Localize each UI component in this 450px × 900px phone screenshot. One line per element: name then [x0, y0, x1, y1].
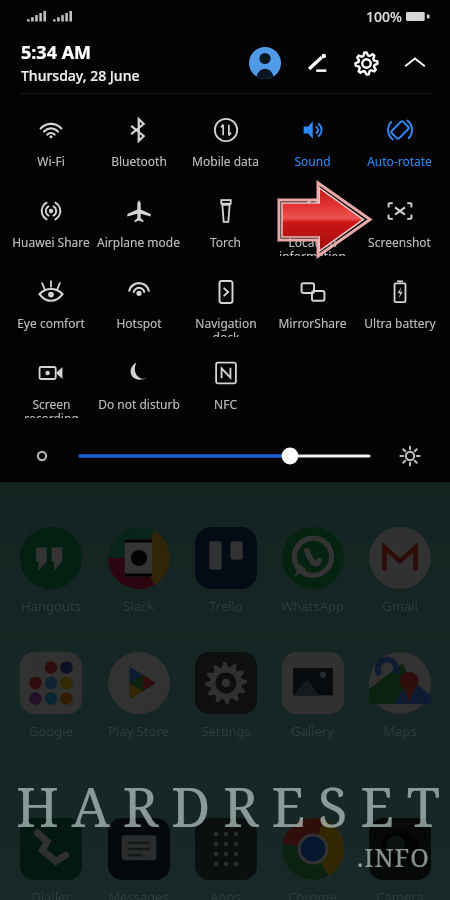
button[interactable]: Gmail: [356, 527, 443, 615]
staticText: Slack: [123, 597, 154, 615]
staticText: Sound: [294, 153, 331, 169]
button[interactable]: NFC: [182, 337, 269, 418]
button[interactable]: Edit: [302, 48, 332, 78]
staticText: 100%: [366, 7, 402, 26]
staticText: Bluetooth: [111, 153, 167, 169]
staticText: MirrorShare: [278, 315, 347, 331]
button[interactable]: Google: [7, 652, 95, 740]
button[interactable]: Collapse: [400, 48, 430, 78]
staticText: Wi-Fi: [37, 153, 65, 169]
staticText: Mobile data: [192, 153, 259, 169]
button[interactable]: Airplane mode: [95, 175, 182, 256]
staticText: Chrome: [288, 888, 337, 900]
button[interactable]: Gallery: [269, 652, 356, 740]
button[interactable]: Torch: [182, 175, 269, 256]
button[interactable]: MirrorShare: [269, 256, 356, 337]
button[interactable]: Profile: [249, 47, 281, 79]
button[interactable]: Ultra battery: [356, 256, 443, 337]
staticText: Camera: [376, 888, 424, 900]
button[interactable]: Settings: [351, 48, 381, 78]
staticText: .INFO: [357, 840, 430, 874]
button[interactable]: Play Store: [95, 652, 182, 740]
staticText: Dialler: [31, 888, 71, 900]
button[interactable]: Settings: [182, 652, 269, 740]
staticText: Screenshot: [368, 234, 431, 250]
staticText: Screen recording: [24, 396, 79, 418]
staticText: Do not disturb: [98, 396, 180, 412]
button[interactable]: Huawei Share: [7, 175, 95, 256]
button[interactable]: Dialler: [7, 818, 95, 900]
button[interactable]: Trello: [182, 527, 269, 615]
staticText: Airplane mode: [97, 234, 180, 250]
staticText: Trello: [209, 597, 243, 615]
button[interactable]: Auto-rotate: [356, 94, 443, 175]
button[interactable]: Screen recording: [7, 337, 95, 418]
staticText: 5:34 AM: [21, 40, 92, 65]
button[interactable]: Navigation dock: [182, 256, 269, 337]
button[interactable]: Mobile data: [182, 94, 269, 175]
staticText: Eye comfort: [17, 315, 85, 331]
button[interactable]: Hangouts: [7, 527, 95, 615]
button[interactable]: Chrome: [269, 818, 356, 900]
staticText: NFC: [214, 396, 237, 412]
staticText: Maps: [383, 722, 417, 740]
button[interactable]: Location information: [269, 175, 356, 256]
staticText: Apps: [210, 888, 241, 900]
button[interactable]: Maps: [356, 652, 443, 740]
staticText: Location information: [279, 234, 346, 256]
staticText: Torch: [210, 234, 241, 250]
staticText: Messages: [108, 888, 169, 900]
staticText: Gallery: [291, 722, 334, 740]
button[interactable]: Hotspot: [95, 256, 182, 337]
staticText: Gmail: [382, 597, 418, 615]
button[interactable]: Apps: [182, 818, 269, 900]
staticText: HARDRESET: [16, 769, 450, 843]
staticText: Thursday, 28 June: [21, 66, 140, 85]
button[interactable]: Slack: [95, 527, 182, 615]
button[interactable]: Wi-Fi: [7, 94, 95, 175]
button[interactable]: Messages: [95, 818, 182, 900]
staticText: Settings: [201, 722, 251, 740]
button[interactable]: WhatsApp: [269, 527, 356, 615]
button[interactable]: Sound: [269, 94, 356, 175]
staticText: Play Store: [108, 722, 169, 740]
staticText: Hangouts: [21, 597, 81, 615]
staticText: WhatsApp: [281, 597, 344, 615]
button[interactable]: Bluetooth: [95, 94, 182, 175]
button[interactable]: Eye comfort: [7, 256, 95, 337]
staticText: Hotspot: [116, 315, 162, 331]
button[interactable]: [0, 438, 450, 482]
staticText: Navigation dock: [195, 315, 257, 337]
staticText: Auto-rotate: [367, 153, 432, 169]
button[interactable]: Camera: [356, 818, 443, 900]
staticText: Google: [29, 722, 73, 740]
button[interactable]: Screenshot: [356, 175, 443, 256]
staticText: Ultra battery: [364, 315, 436, 331]
button[interactable]: Do not disturb: [95, 337, 182, 418]
staticText: Huawei Share: [12, 234, 90, 250]
